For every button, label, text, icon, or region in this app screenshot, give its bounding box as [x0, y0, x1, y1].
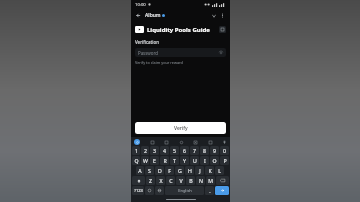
button[interactable]: O	[210, 156, 219, 165]
button[interactable]: 6	[180, 146, 189, 155]
button[interactable]: Backspace	[216, 176, 229, 185]
button[interactable]: T	[170, 156, 179, 165]
staticText: 1	[135, 147, 138, 154]
button[interactable]: Shift	[132, 176, 145, 185]
staticText: 10:00	[135, 2, 146, 8]
button[interactable]: Toolbar action 4	[193, 140, 198, 145]
button[interactable]: .	[205, 186, 214, 195]
button[interactable]: R	[160, 156, 169, 165]
staticText: 7	[193, 147, 196, 154]
button[interactable]: Options	[219, 26, 226, 33]
button[interactable]: 0	[220, 146, 229, 155]
button[interactable]: Enter	[215, 186, 229, 195]
button[interactable]: G	[175, 166, 184, 175]
staticText: 4	[163, 147, 166, 154]
button[interactable]: Keyboard settings	[134, 139, 140, 145]
button[interactable]: 5	[170, 146, 179, 155]
button[interactable]: More options	[218, 11, 227, 20]
staticText: D	[158, 167, 162, 174]
staticText: 2	[144, 147, 147, 154]
button[interactable]: H	[185, 166, 194, 175]
button[interactable]: F	[165, 166, 174, 175]
staticText: Liquidity Pools Guide	[147, 26, 210, 34]
button[interactable]: U	[190, 156, 199, 165]
button[interactable]: Y	[180, 156, 189, 165]
button[interactable]: L	[215, 166, 224, 175]
button[interactable]: M	[206, 176, 215, 185]
button[interactable]: 7	[190, 146, 199, 155]
button[interactable]: B	[186, 176, 195, 185]
button[interactable]: P	[220, 156, 229, 165]
staticText: W	[143, 157, 148, 164]
staticText: S	[148, 167, 151, 174]
button[interactable]: 2	[141, 146, 149, 155]
staticText: Verify to claim your reward	[135, 60, 183, 65]
staticText: English	[178, 188, 192, 193]
button[interactable]: V	[176, 176, 185, 185]
staticText: 5	[173, 147, 176, 154]
button[interactable]: Toolbar action 1	[150, 140, 155, 145]
button[interactable]: Emoji	[145, 186, 154, 195]
button[interactable]: W	[141, 156, 149, 165]
staticText: K	[208, 167, 212, 174]
button[interactable]: D	[155, 166, 164, 175]
button[interactable]: J	[195, 166, 204, 175]
button[interactable]: Liquidity Pools Guide	[135, 24, 226, 35]
button[interactable]: I	[200, 156, 209, 165]
staticText: O	[212, 157, 217, 164]
button[interactable]: Language	[155, 186, 164, 195]
button[interactable]: Back	[134, 11, 143, 20]
staticText: B	[189, 177, 193, 184]
staticText: R	[163, 157, 167, 164]
staticText: Album	[145, 12, 161, 19]
button[interactable]: ?123	[132, 186, 144, 195]
button[interactable]: N	[196, 176, 205, 185]
staticText: ?123	[134, 188, 143, 193]
staticText: 3	[153, 147, 156, 154]
staticText: V	[179, 177, 183, 184]
staticText: T	[173, 157, 176, 164]
button[interactable]: Expand	[209, 11, 218, 20]
staticText: Verification	[135, 39, 159, 45]
staticText: A	[138, 167, 142, 174]
button[interactable]: C	[166, 176, 175, 185]
staticText: P	[223, 157, 227, 164]
staticText: J	[199, 167, 201, 174]
staticText: C	[169, 177, 173, 184]
staticText: 9	[213, 147, 216, 154]
staticText: 0	[223, 147, 226, 154]
staticText: Y	[183, 157, 186, 164]
staticText: 6	[183, 147, 186, 154]
button[interactable]: 1	[132, 146, 140, 155]
button[interactable]: Toolbar action 6	[222, 140, 227, 145]
button[interactable]: Z	[146, 176, 155, 185]
staticText: I	[204, 157, 206, 164]
button[interactable]: S	[145, 166, 154, 175]
staticText: X	[159, 177, 163, 184]
button[interactable]: 4	[160, 146, 169, 155]
staticText: H	[188, 167, 192, 174]
button[interactable]: K	[205, 166, 214, 175]
staticText: Password	[138, 50, 158, 56]
button[interactable]: Toolbar action 2	[164, 140, 169, 145]
button[interactable]: Password	[135, 48, 226, 57]
staticText: F	[168, 167, 171, 174]
button[interactable]: Verify	[135, 122, 226, 134]
staticText: E	[153, 157, 156, 164]
button[interactable]: 9	[210, 146, 219, 155]
button[interactable]: X	[156, 176, 165, 185]
staticText: .	[209, 187, 211, 194]
button[interactable]: Toolbar action 3	[179, 140, 184, 145]
staticText: Z	[149, 177, 152, 184]
button[interactable]: English	[165, 186, 204, 195]
staticText: M	[208, 177, 213, 184]
button[interactable]: Q	[132, 156, 140, 165]
button[interactable]: Toolbar action 5	[208, 140, 213, 145]
staticText: U	[193, 157, 197, 164]
button[interactable]: A	[136, 166, 144, 175]
button[interactable]: 3	[150, 146, 159, 155]
button[interactable]: E	[150, 156, 159, 165]
staticText: N	[199, 177, 203, 184]
button[interactable]: 8	[200, 146, 209, 155]
staticText: L	[218, 167, 221, 174]
